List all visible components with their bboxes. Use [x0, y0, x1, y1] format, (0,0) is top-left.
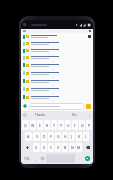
- button[interactable]: X: [41, 143, 47, 152]
- button[interactable]: Send message: [83, 154, 92, 163]
- button[interactable]: Emoji: [39, 154, 45, 163]
- button[interactable]: [21, 40, 93, 47]
- button[interactable]: [21, 69, 93, 77]
- button[interactable]: [21, 47, 93, 54]
- staticText: S: [36, 134, 38, 139]
- staticText: Thanks: [35, 113, 46, 117]
- staticText: X: [43, 145, 46, 150]
- button[interactable]: Backspace: [83, 143, 92, 152]
- staticText: Y: [60, 123, 63, 128]
- button[interactable]: Attach: [23, 104, 27, 108]
- staticText: B: [64, 145, 67, 150]
- button[interactable]: K: [76, 132, 82, 141]
- staticText: A: [27, 134, 30, 139]
- staticText: Q: [24, 123, 27, 128]
- button[interactable]: M: [76, 143, 82, 152]
- staticText: Z: [35, 145, 38, 150]
- staticText: V: [57, 145, 60, 150]
- staticText: K: [78, 134, 81, 139]
- button[interactable]: E: [37, 120, 43, 130]
- button[interactable]: Y: [58, 120, 64, 130]
- button[interactable]: O: [79, 120, 85, 130]
- staticText: N: [71, 145, 74, 150]
- button[interactable]: D: [41, 132, 47, 141]
- button[interactable]: F: [48, 132, 54, 141]
- button[interactable]: [21, 61, 93, 69]
- button[interactable]: H: [62, 132, 68, 141]
- button[interactable]: A: [25, 132, 32, 141]
- button[interactable]: R: [44, 120, 50, 130]
- button[interactable]: V: [55, 143, 61, 152]
- button[interactable]: Expand suggestions: [88, 114, 91, 117]
- staticText: J: [71, 134, 73, 139]
- staticText: ,: [35, 156, 36, 161]
- staticText: .: [79, 156, 80, 161]
- staticText: R: [46, 123, 49, 128]
- staticText: T: [53, 123, 55, 128]
- staticText: ?123: [24, 157, 30, 161]
- button[interactable]: [21, 93, 93, 101]
- button[interactable]: G: [55, 132, 61, 141]
- button[interactable]: S: [33, 132, 40, 141]
- button[interactable]: U: [65, 120, 71, 130]
- staticText: F: [50, 134, 52, 139]
- button[interactable]: [21, 33, 93, 40]
- button[interactable]: Shift: [22, 143, 32, 152]
- button[interactable]: N: [69, 143, 75, 152]
- staticText: W: [31, 123, 35, 128]
- button[interactable]: T: [51, 120, 57, 130]
- button[interactable]: P: [86, 120, 92, 130]
- button[interactable]: Back: [23, 23, 26, 26]
- button[interactable]: L: [83, 132, 89, 141]
- staticText: G: [57, 134, 60, 139]
- button[interactable]: J: [69, 132, 75, 141]
- button[interactable]: B: [62, 143, 68, 152]
- button[interactable]: Q: [22, 120, 29, 130]
- button[interactable]: Z: [33, 143, 40, 152]
- staticText: M: [77, 145, 81, 150]
- staticText: U: [67, 123, 70, 128]
- staticText: H: [64, 134, 67, 139]
- staticText: C: [50, 145, 53, 150]
- staticText: I: [74, 123, 76, 128]
- button[interactable]: ?123: [22, 154, 31, 163]
- button[interactable]: C: [48, 143, 54, 152]
- button[interactable]: [21, 77, 93, 85]
- button[interactable]: Send: [86, 104, 91, 109]
- button[interactable]: [28, 103, 85, 110]
- button[interactable]: I: [72, 120, 78, 130]
- staticText: E: [39, 123, 41, 128]
- button[interactable]: Comma: [32, 154, 38, 163]
- button[interactable]: [21, 85, 93, 93]
- button[interactable]: W: [30, 120, 36, 130]
- button[interactable]: [21, 54, 93, 61]
- button[interactable]: Google: [23, 113, 27, 117]
- staticText: P: [88, 123, 91, 128]
- staticText: L: [85, 134, 87, 139]
- staticText: O: [81, 123, 84, 128]
- staticText: Yes: [72, 113, 77, 117]
- staticText: D: [43, 134, 46, 139]
